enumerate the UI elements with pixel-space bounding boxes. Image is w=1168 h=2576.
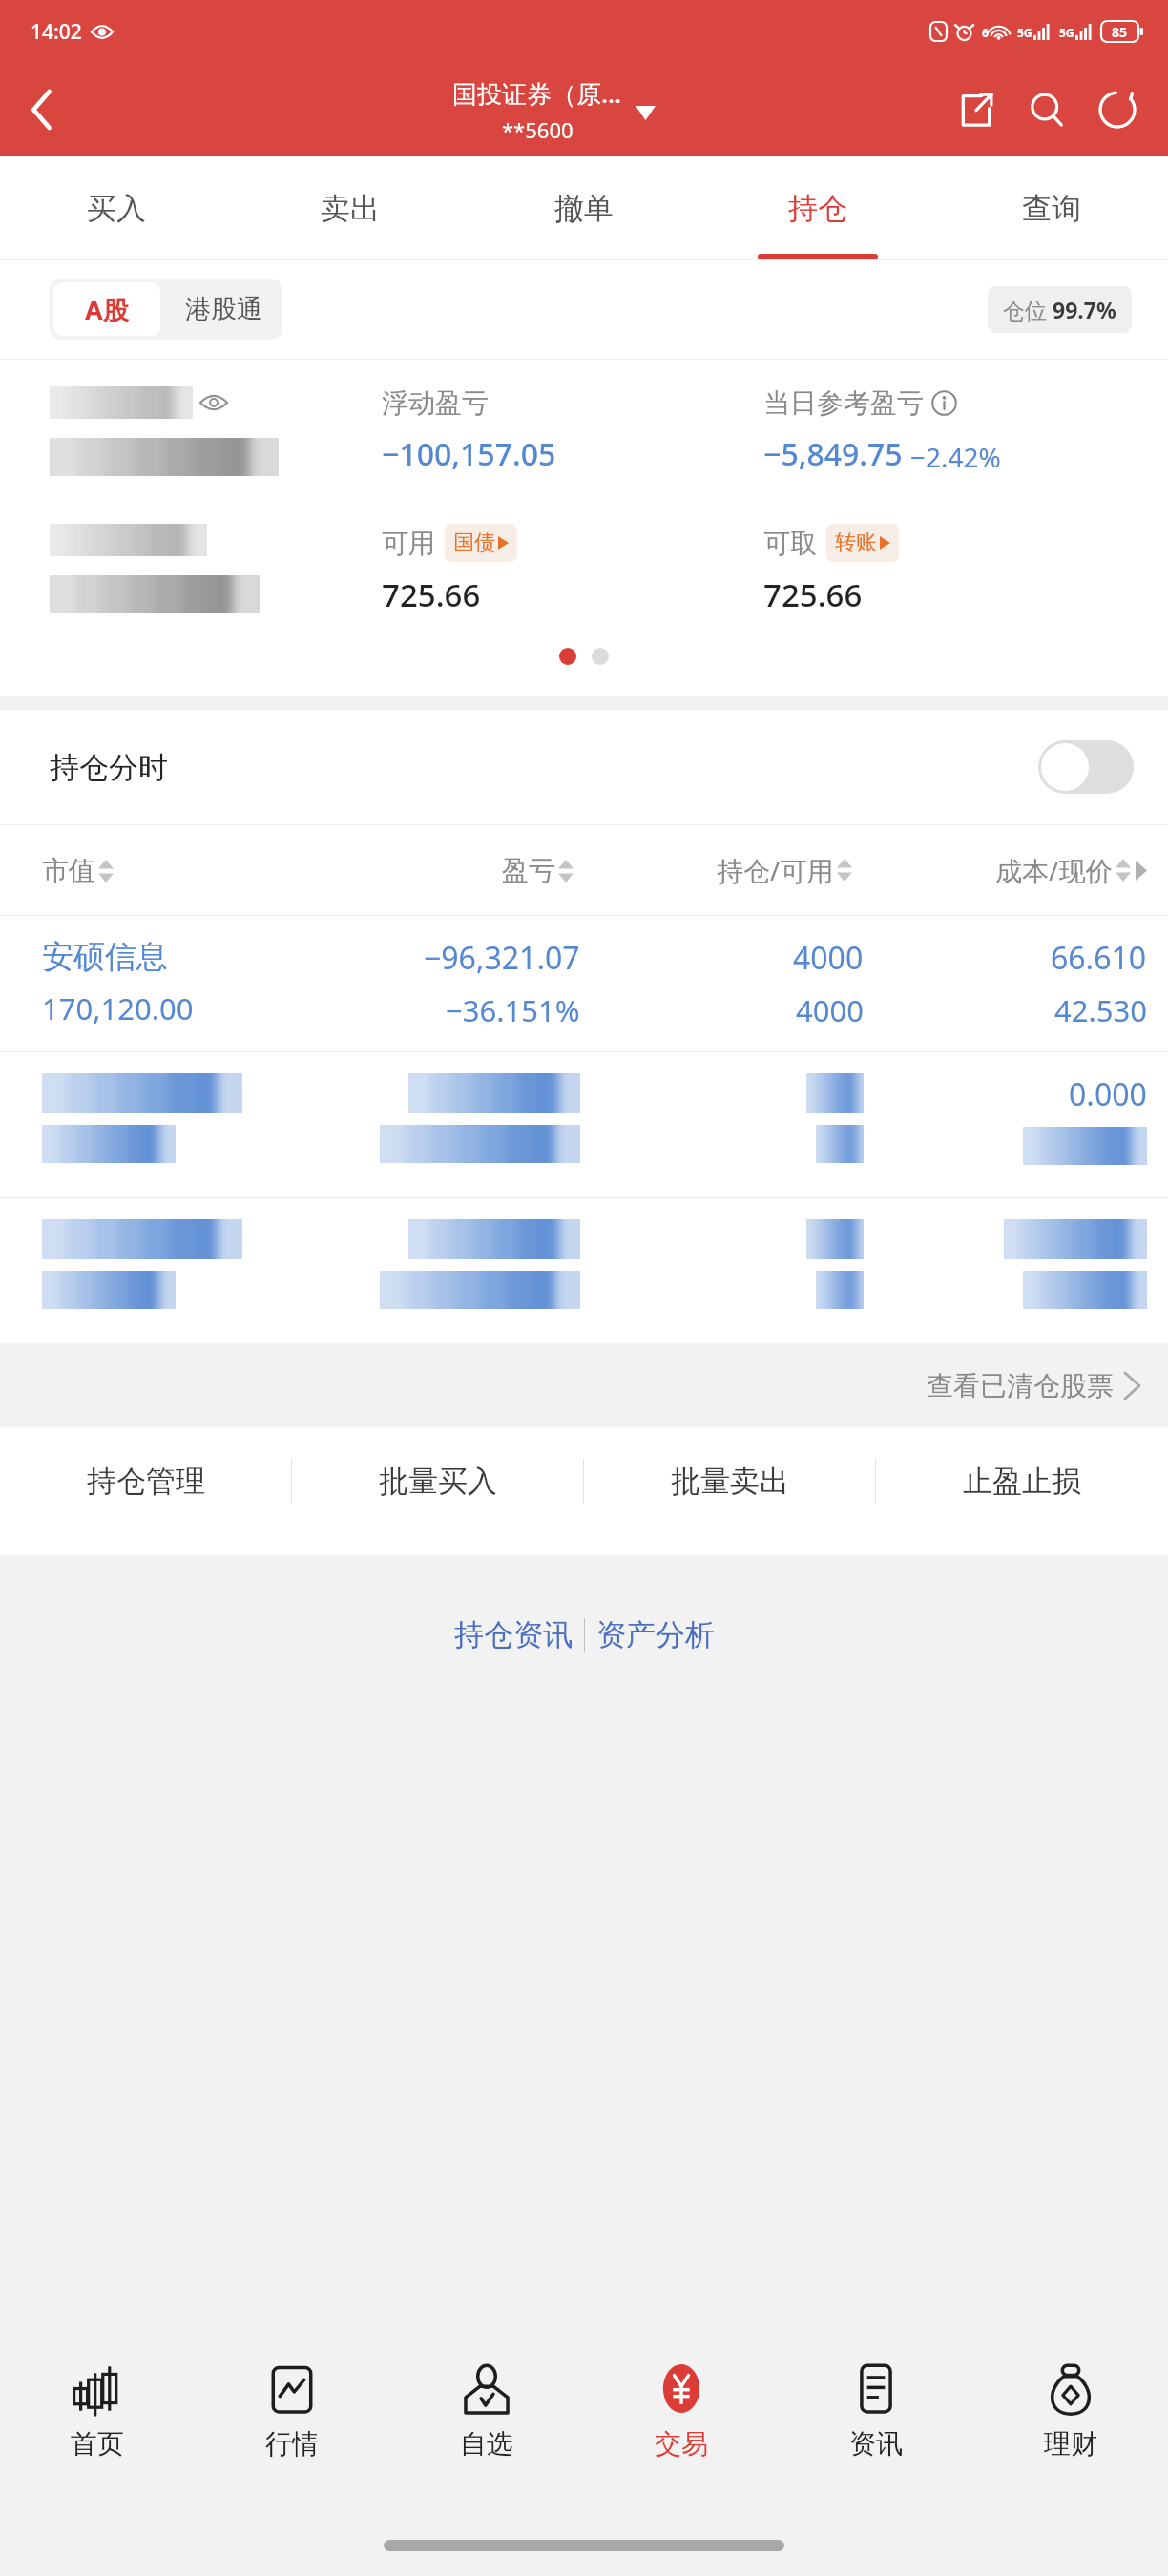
- button[interactable]: 持仓分时开关: [1038, 740, 1134, 794]
- button[interactable]: 首页: [0, 2332, 195, 2515]
- button[interactable]: Refresh: [1082, 74, 1153, 145]
- staticText: 725.66: [382, 573, 481, 616]
- button[interactable]: 持仓资讯: [443, 1616, 584, 1653]
- button[interactable]: 港股通: [164, 279, 282, 340]
- staticText: −2.42%: [910, 439, 1001, 475]
- staticText: 85: [1112, 23, 1128, 41]
- staticText: A股: [85, 292, 129, 327]
- staticText: **5600: [502, 115, 574, 144]
- button[interactable]: 资讯: [779, 2332, 973, 2515]
- staticText: 理财: [1044, 2427, 1097, 2461]
- staticText: 卖出: [321, 190, 380, 227]
- staticText: 国投证券（原…: [452, 76, 622, 111]
- staticText: 自选: [460, 2427, 513, 2461]
- staticText: 持仓分时: [50, 749, 168, 786]
- staticText: 5G: [1059, 25, 1074, 40]
- staticText: 港股通: [185, 293, 262, 325]
- button[interactable]: A股: [53, 282, 160, 336]
- button[interactable]: 自选: [389, 2332, 584, 2515]
- button[interactable]: Share: [941, 74, 1012, 145]
- staticText: 4000: [796, 990, 864, 1030]
- button[interactable]: 持仓/可用: [574, 852, 852, 888]
- staticText: 持仓管理: [87, 1463, 205, 1500]
- staticText: 持仓: [788, 190, 847, 227]
- button[interactable]: 交易: [584, 2332, 779, 2515]
- staticText: 0.000: [1069, 1073, 1147, 1115]
- button[interactable]: 转账: [826, 524, 899, 562]
- button[interactable]: 持仓管理: [0, 1427, 292, 1534]
- staticText: 首页: [71, 2427, 124, 2461]
- staticText: 42.530: [1054, 990, 1147, 1030]
- staticText: −96,321.07: [424, 937, 580, 979]
- staticText: 持仓/可用: [717, 852, 834, 888]
- staticText: 盈亏: [502, 854, 555, 887]
- button[interactable]: 仓位: [988, 286, 1132, 333]
- staticText: −5,849.75: [763, 433, 903, 475]
- staticText: 仓位: [1003, 295, 1053, 324]
- staticText: 撤单: [554, 190, 614, 227]
- button[interactable]: 0.000: [0, 1052, 1168, 1197]
- staticText: 可用: [382, 527, 435, 560]
- button[interactable]: 国债: [445, 524, 517, 562]
- staticText: 99.7%: [1053, 295, 1116, 324]
- button[interactable]: 买入: [0, 156, 233, 260]
- staticText: 5G: [1017, 25, 1032, 40]
- button[interactable]: 止盈止损: [876, 1427, 1168, 1534]
- staticText: 止盈止损: [963, 1463, 1081, 1500]
- staticText: 170,120.00: [42, 988, 194, 1028]
- staticText: 浮动盈亏: [382, 386, 489, 420]
- button[interactable]: 理财: [973, 2332, 1168, 2515]
- staticText: 市值: [42, 854, 95, 887]
- button[interactable]: Back: [0, 68, 84, 152]
- staticText: −36.151%: [446, 990, 580, 1030]
- staticText: 行情: [265, 2427, 319, 2461]
- staticText: −100,157.05: [382, 433, 556, 475]
- button[interactable]: 行情: [195, 2332, 389, 2515]
- button[interactable]: 批量买入: [292, 1427, 584, 1534]
- button[interactable]: 市值: [42, 854, 308, 887]
- staticText: 资讯: [849, 2427, 903, 2461]
- staticText: 6: [982, 25, 989, 40]
- staticText: 转账: [835, 530, 877, 556]
- button[interactable]: 查看已清仓股票: [0, 1343, 1168, 1427]
- button[interactable]: 撤单: [467, 156, 700, 260]
- staticText: 买入: [87, 190, 146, 227]
- staticText: 成本/现价: [995, 852, 1113, 888]
- button[interactable]: 成本/现价: [852, 852, 1131, 888]
- staticText: 725.66: [763, 573, 863, 616]
- button[interactable]: 安硕信息: [0, 916, 1168, 1051]
- staticText: 持仓资讯: [454, 1616, 573, 1653]
- staticText: 66.610: [1051, 937, 1147, 979]
- staticText: 查询: [1022, 190, 1081, 227]
- button[interactable]: 持仓: [700, 156, 934, 260]
- button[interactable]: 批量卖出: [584, 1427, 876, 1534]
- button[interactable]: [0, 1198, 1168, 1343]
- staticText: 14:02: [31, 18, 82, 46]
- button[interactable]: 国投证券（原…: [452, 76, 656, 144]
- button[interactable]: 盈亏: [308, 854, 574, 887]
- staticText: 批量买入: [379, 1463, 497, 1500]
- staticText: 资产分析: [596, 1616, 715, 1653]
- staticText: 可取: [763, 527, 817, 560]
- staticText: 批量卖出: [671, 1463, 789, 1500]
- staticText: 4000: [793, 937, 864, 979]
- button[interactable]: 查询: [934, 156, 1168, 260]
- staticText: 国债: [453, 530, 495, 556]
- button[interactable]: 卖出: [233, 156, 467, 260]
- staticText: 查看已清仓股票: [927, 1369, 1114, 1402]
- button[interactable]: Search: [1012, 74, 1082, 145]
- button[interactable]: 资产分析: [585, 1616, 726, 1653]
- staticText: 安硕信息: [42, 937, 168, 977]
- staticText: 当日参考盈亏: [763, 386, 924, 420]
- staticText: 交易: [655, 2427, 708, 2461]
